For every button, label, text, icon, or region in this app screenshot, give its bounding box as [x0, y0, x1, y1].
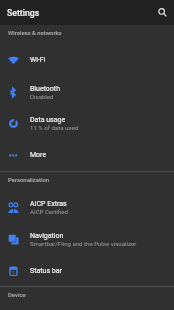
- staticText: Personalization: [8, 177, 50, 184]
- staticText: AICP Extras: [30, 200, 67, 208]
- staticText: Bluetooth: [30, 85, 60, 93]
- staticText: Wi-Fi: [30, 56, 46, 64]
- staticText: 11 % of data used: [30, 124, 79, 131]
- staticText: Disabled: [30, 93, 54, 100]
- staticText: Data usage: [30, 116, 66, 124]
- button[interactable]: More: [0, 139, 174, 171]
- staticText: Smartbar/Fling and the Pulse visualizer: [30, 240, 137, 247]
- button[interactable]: Search: [150, 0, 174, 25]
- button[interactable]: Navigation: [0, 223, 174, 255]
- staticText: Wireless & networks: [8, 30, 62, 37]
- button[interactable]: Bluetooth: [0, 76, 174, 108]
- button[interactable]: Status bar: [0, 255, 174, 287]
- staticText: AICP Certified: [30, 208, 68, 215]
- staticText: Device: [8, 292, 26, 299]
- staticText: Settings: [7, 8, 40, 18]
- staticText: Navigation: [30, 232, 64, 240]
- button[interactable]: Wi-Fi: [0, 44, 174, 76]
- button[interactable]: Data usage: [0, 107, 174, 139]
- staticText: More: [30, 151, 47, 159]
- staticText: Status bar: [30, 267, 62, 275]
- button[interactable]: AICP Extras: [0, 191, 174, 223]
